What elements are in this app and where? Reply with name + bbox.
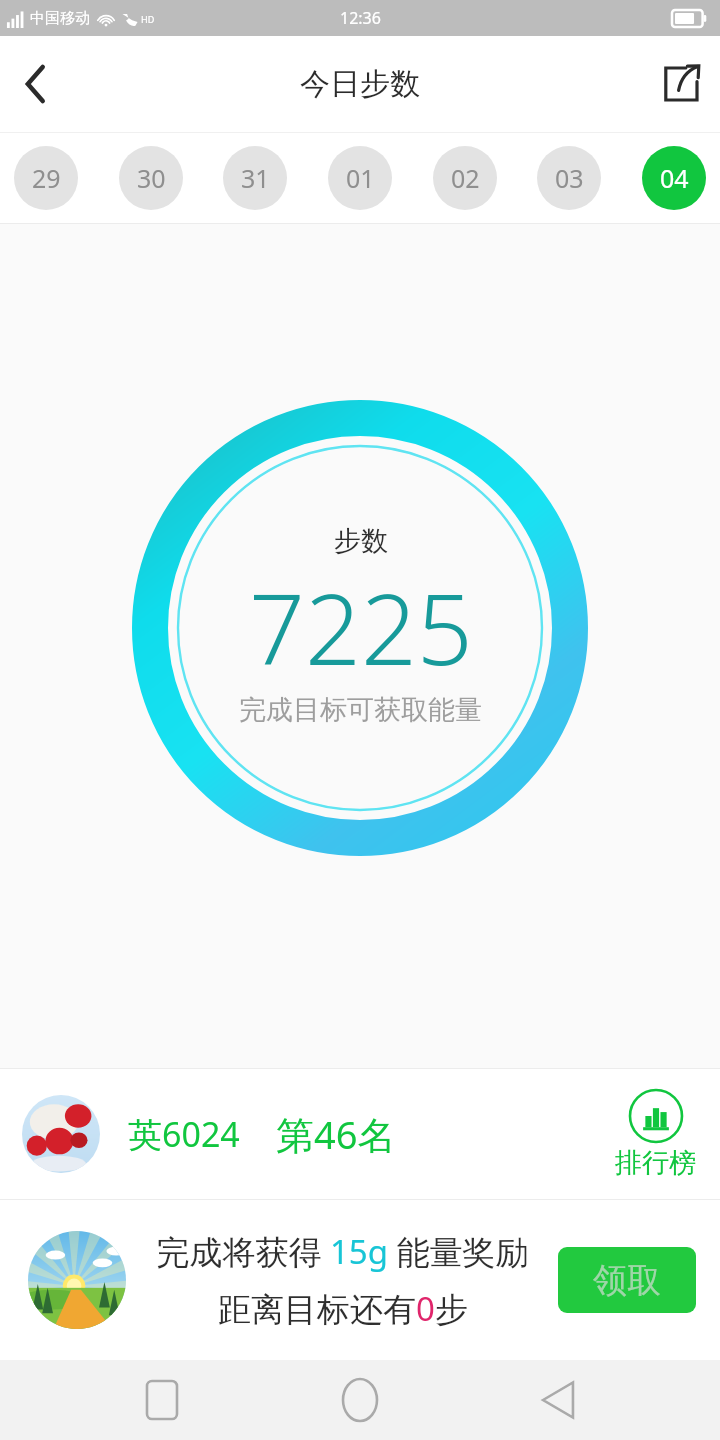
staticText: 英6024 <box>128 1111 240 1157</box>
staticText: 中国移动 <box>30 9 90 28</box>
staticText: 01 <box>346 161 375 195</box>
button[interactable]: 英6024 <box>0 1069 720 1199</box>
staticText: 03 <box>555 161 584 195</box>
button[interactable]: 01 <box>328 146 392 210</box>
staticText: 完成将获得 15g 能量奖励 <box>156 1229 529 1274</box>
button[interactable]: 29 <box>14 146 78 210</box>
button[interactable]: Back <box>0 48 72 120</box>
staticText: 02 <box>451 161 480 195</box>
staticText: 7225 <box>249 560 473 693</box>
staticText: HD <box>141 13 155 25</box>
button[interactable]: 02 <box>433 146 497 210</box>
staticText: 第46名 <box>276 1108 396 1160</box>
button[interactable]: 04 <box>642 146 706 210</box>
button[interactable]: 领取 <box>558 1247 696 1313</box>
staticText: 领取 <box>593 1259 661 1302</box>
staticText: 步数 <box>334 524 388 558</box>
staticText: 29 <box>32 161 61 195</box>
staticText: 30 <box>137 161 166 195</box>
button[interactable]: 排行榜 <box>615 1088 696 1180</box>
button[interactable]: 31 <box>223 146 287 210</box>
button[interactable]: Home <box>324 1364 396 1436</box>
staticText: 31 <box>241 161 270 195</box>
button[interactable]: Back <box>522 1364 594 1436</box>
button[interactable]: 03 <box>537 146 601 210</box>
staticText: 排行榜 <box>615 1146 696 1180</box>
staticText: 完成目标可获取能量 <box>239 693 482 727</box>
staticText: 12:36 <box>340 7 381 29</box>
button[interactable]: Recents <box>126 1364 198 1436</box>
button[interactable]: Share <box>642 45 720 123</box>
staticText: 04 <box>660 161 689 195</box>
button[interactable]: 30 <box>119 146 183 210</box>
staticText: 距离目标还有0步 <box>218 1286 468 1331</box>
staticText: 今日步数 <box>300 65 420 103</box>
